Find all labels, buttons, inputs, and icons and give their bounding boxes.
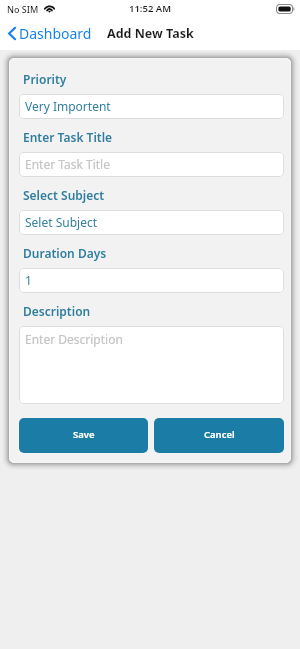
staticText: Duration Days <box>23 245 107 261</box>
staticText: Enter Task Title <box>23 129 113 145</box>
staticText: 1 <box>25 272 32 288</box>
button[interactable]: Dashboard <box>8 24 92 43</box>
button[interactable]: Enter Task Title <box>19 152 284 177</box>
staticText: No SIM <box>7 3 39 15</box>
staticText: Description <box>23 303 91 319</box>
staticText: Enter Description <box>25 331 123 347</box>
staticText: Select Subject <box>23 187 105 203</box>
button[interactable]: Enter Description <box>19 326 284 404</box>
staticText: Add New Task <box>107 25 194 42</box>
staticText: Priority <box>23 71 67 87</box>
staticText: Save <box>73 428 95 441</box>
button[interactable]: 1 <box>19 268 284 293</box>
button[interactable]: Very Importent <box>19 94 284 119</box>
staticText: Very Importent <box>25 98 111 114</box>
staticText: Enter Task Title <box>25 156 110 172</box>
button[interactable]: Save <box>19 418 148 453</box>
staticText: Selet Subject <box>25 214 98 230</box>
staticText: Dashboard <box>19 24 92 43</box>
staticText: Cancel <box>204 428 235 441</box>
button[interactable]: Selet Subject <box>19 210 284 235</box>
staticText: 11:52 AM <box>129 2 172 15</box>
button[interactable]: Cancel <box>154 418 284 453</box>
